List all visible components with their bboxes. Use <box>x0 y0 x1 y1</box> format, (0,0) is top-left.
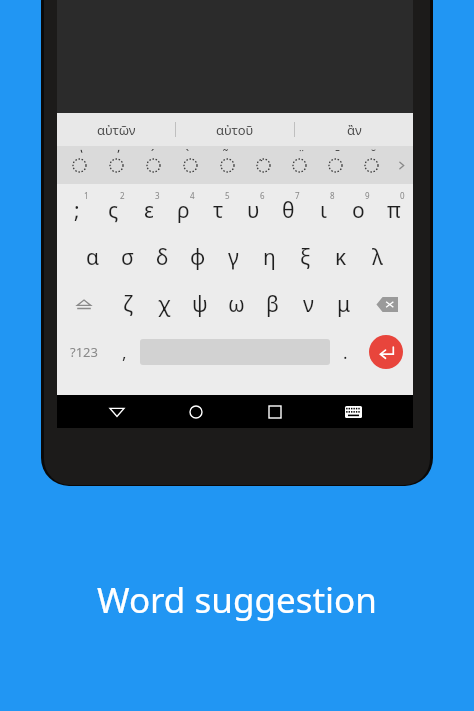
button[interactable]: Back <box>77 395 156 428</box>
button[interactable]: α <box>75 234 110 281</box>
staticText: χ <box>158 290 171 319</box>
button[interactable]: δ <box>145 234 180 281</box>
button[interactable]: υ <box>236 187 271 234</box>
button[interactable]: ́ <box>135 146 172 184</box>
staticText: 7 <box>295 190 300 201</box>
button[interactable]: . <box>330 328 361 376</box>
button[interactable]: χ <box>146 281 182 328</box>
button[interactable]: γ <box>215 234 251 281</box>
button[interactable]: ψ <box>182 281 218 328</box>
button[interactable]: ρ <box>166 187 201 234</box>
staticText: ̃ <box>226 145 230 163</box>
button[interactable]: θ <box>271 187 306 234</box>
button[interactable]: σ <box>110 234 145 281</box>
staticText: ε <box>144 196 154 225</box>
staticText: ̆ <box>370 145 374 163</box>
button[interactable]: αὐτοῦ <box>176 113 294 146</box>
button[interactable]: More accents <box>389 146 413 184</box>
staticText: ο <box>352 196 365 225</box>
button[interactable]: ο <box>341 187 376 234</box>
button[interactable]: Backspace <box>362 281 411 328</box>
button[interactable]: Shift <box>59 281 109 328</box>
button[interactable]: ζ <box>109 281 146 328</box>
staticText: Word suggestion <box>97 576 377 624</box>
button[interactable]: τ <box>201 187 236 234</box>
staticText: ι <box>320 196 327 225</box>
staticText: κ <box>335 243 347 272</box>
staticText: α <box>86 243 100 272</box>
button[interactable]: ἂν <box>295 113 413 146</box>
staticText: ̀ <box>189 145 193 163</box>
staticText: υ <box>247 196 260 225</box>
button[interactable]: ι <box>306 187 341 234</box>
staticText: ̓ <box>115 145 119 163</box>
staticText: ̔ <box>78 145 82 163</box>
staticText: μ <box>337 290 351 319</box>
button[interactable]: η <box>251 234 287 281</box>
button[interactable]: Enter <box>361 328 411 376</box>
staticText: γ <box>228 243 239 272</box>
staticText: ζ <box>123 290 133 319</box>
button[interactable]: μ <box>326 281 362 328</box>
button[interactable]: ν <box>290 281 326 328</box>
staticText: αὐτῶν <box>97 121 136 139</box>
button[interactable]: ; <box>59 187 95 234</box>
button[interactable]: ξ <box>287 234 323 281</box>
staticText: φ <box>190 243 206 272</box>
staticText: , <box>122 341 127 364</box>
button[interactable]: Home <box>156 395 235 428</box>
staticText: 2 <box>120 190 125 201</box>
staticText: τ <box>213 196 224 225</box>
staticText: ̄ <box>334 145 338 163</box>
button[interactable]: Recents <box>235 395 314 428</box>
staticText: π <box>387 196 401 225</box>
staticText: θ <box>282 196 295 225</box>
staticText: 9 <box>365 190 370 201</box>
staticText: 5 <box>225 190 230 201</box>
staticText: ̈ <box>298 145 302 163</box>
staticText: . <box>343 341 348 364</box>
staticText: 4 <box>190 190 195 201</box>
button[interactable]: , <box>109 328 140 376</box>
staticText: ξ <box>300 243 311 272</box>
staticText: σ <box>121 243 134 272</box>
button[interactable]: ω <box>218 281 254 328</box>
staticText: ω <box>228 290 245 319</box>
staticText: ρ <box>177 196 190 225</box>
staticText: β <box>266 290 279 319</box>
staticText: 1 <box>84 190 89 201</box>
staticText: ψ <box>192 290 208 319</box>
button[interactable]: ς <box>95 187 131 234</box>
staticText: ἂν <box>347 121 362 139</box>
button[interactable]: ̃ <box>209 146 245 184</box>
button[interactable]: ε <box>131 187 166 234</box>
button[interactable]: Switch keyboard <box>314 395 393 428</box>
staticText: ́ <box>152 145 156 163</box>
button[interactable]: ̣ <box>245 146 281 184</box>
staticText: ν <box>303 290 314 319</box>
button[interactable]: ̈ <box>281 146 317 184</box>
button[interactable]: αὐτῶν <box>57 113 175 146</box>
button[interactable]: ̓ <box>98 146 135 184</box>
button[interactable]: κ <box>323 234 359 281</box>
button[interactable]: ̔ <box>61 146 98 184</box>
button[interactable]: ?123 <box>59 328 109 376</box>
staticText: ς <box>108 196 119 225</box>
staticText: αὐτοῦ <box>216 121 254 139</box>
button[interactable]: λ <box>359 234 395 281</box>
staticText: δ <box>156 243 169 272</box>
staticText: ?123 <box>70 343 98 361</box>
staticText: λ <box>372 243 383 272</box>
staticText: ̣ <box>262 145 266 163</box>
button[interactable]: ̆ <box>353 146 389 184</box>
button[interactable]: ̄ <box>317 146 353 184</box>
button[interactable]: ̀ <box>172 146 209 184</box>
staticText: 6 <box>260 190 265 201</box>
button[interactable]: β <box>254 281 290 328</box>
button[interactable]: π <box>376 187 411 234</box>
button[interactable]: φ <box>180 234 215 281</box>
staticText: 8 <box>330 190 335 201</box>
staticText: ; <box>74 196 80 225</box>
staticText: 3 <box>155 190 160 201</box>
